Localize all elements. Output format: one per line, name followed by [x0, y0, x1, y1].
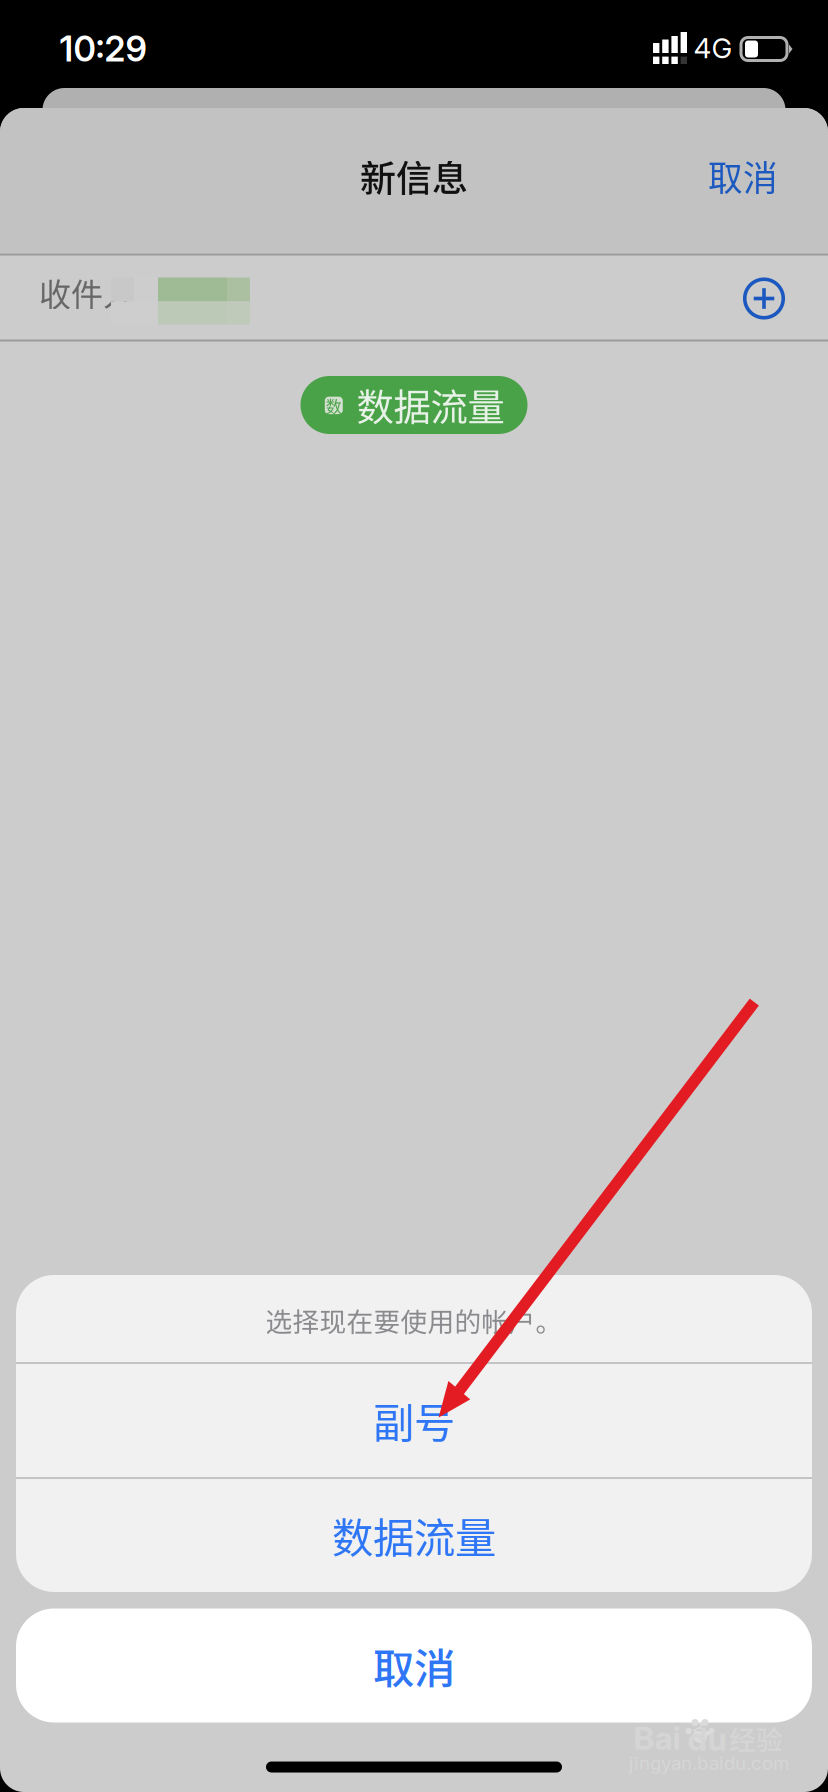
button[interactable]: 数 [300, 376, 527, 434]
button[interactable]: 副号 [16, 1363, 812, 1476]
staticText: 数据流量 [356, 378, 504, 432]
staticText: 10:29 [59, 28, 146, 70]
staticText: 收件人 [39, 269, 135, 316]
staticText: jingyan.baidu.com [629, 1752, 789, 1774]
staticText: 副号 [373, 1390, 455, 1450]
button[interactable]: 取消 [683, 131, 803, 221]
staticText: 4G [693, 31, 732, 65]
staticText: 选择现在要使用的帐户。 [265, 1301, 562, 1339]
staticText: 数 [326, 394, 342, 417]
button[interactable]: 数据流量 [16, 1479, 812, 1591]
staticText: du [687, 1720, 726, 1758]
staticText: 取消 [373, 1636, 455, 1695]
staticText: 取消 [708, 151, 778, 201]
staticText: Bai [633, 1719, 680, 1757]
staticText: 新信息 [360, 150, 468, 202]
staticText: 经验 [729, 1719, 783, 1757]
button[interactable]: 取消 [16, 1608, 812, 1722]
button[interactable]: Add contact [716, 254, 812, 342]
staticText: 数据流量 [332, 1505, 496, 1565]
